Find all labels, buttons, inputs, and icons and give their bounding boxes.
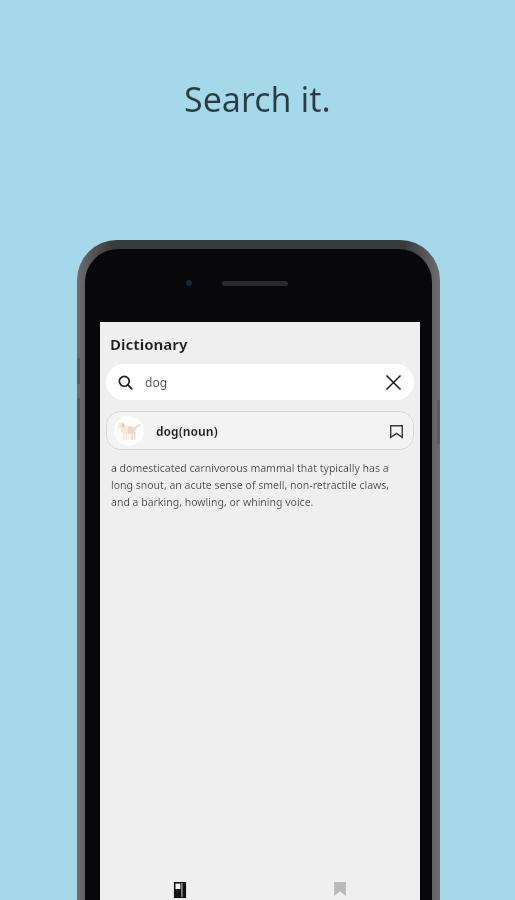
button[interactable]: Dict (100, 876, 260, 900)
staticText: Search it. (184, 76, 331, 122)
staticText: Dictionary (110, 334, 188, 354)
button[interactable]: Clear search (384, 373, 402, 391)
staticText: dog (145, 374, 168, 390)
staticText: a domesticated carnivorous mammal that t… (111, 461, 409, 509)
button[interactable]: dog (106, 364, 414, 400)
button[interactable]: Lexinder (260, 876, 420, 900)
staticText: dog(noun) (156, 423, 218, 439)
button[interactable]: Bookmark (386, 421, 406, 441)
button[interactable]: dog(noun) (106, 411, 414, 450)
